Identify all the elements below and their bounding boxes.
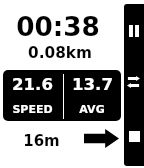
button[interactable]: Next — [84, 129, 119, 148]
staticText: 00:38 — [16, 12, 100, 43]
staticText: SPEED — [12, 103, 53, 116]
button[interactable]: Pause — [124, 18, 144, 44]
staticText: 16m — [23, 132, 60, 149]
staticText: 21.6 — [12, 75, 53, 94]
staticText: 0.08km — [28, 44, 92, 62]
button[interactable]: Stop — [124, 123, 144, 149]
staticText: 13.7 — [72, 75, 113, 94]
button[interactable]: 13.7 — [63, 70, 121, 121]
button[interactable]: 21.6 — [3, 70, 61, 121]
staticText: AVG — [79, 103, 105, 116]
button[interactable]: Swap metrics — [124, 69, 143, 95]
